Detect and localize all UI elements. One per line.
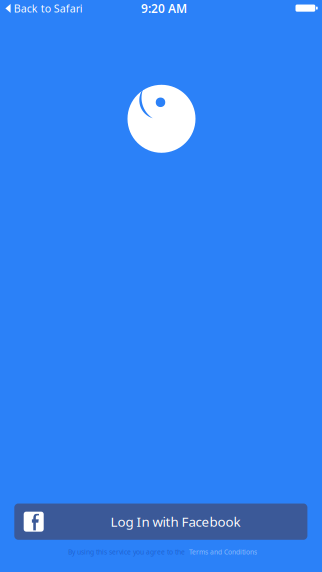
staticText: Back to Safari — [14, 1, 83, 15]
staticText: Log In with Facebook — [111, 513, 241, 530]
staticText: By using this service you agree to the — [68, 548, 185, 556]
button[interactable]: Back to Safari — [0, 0, 87, 18]
button[interactable]: Terms and Conditions — [189, 548, 257, 556]
staticText: 9:20 AM — [141, 0, 187, 16]
button[interactable]: Log In with Facebook — [14, 503, 307, 540]
staticText: Terms and Conditions — [189, 548, 257, 556]
